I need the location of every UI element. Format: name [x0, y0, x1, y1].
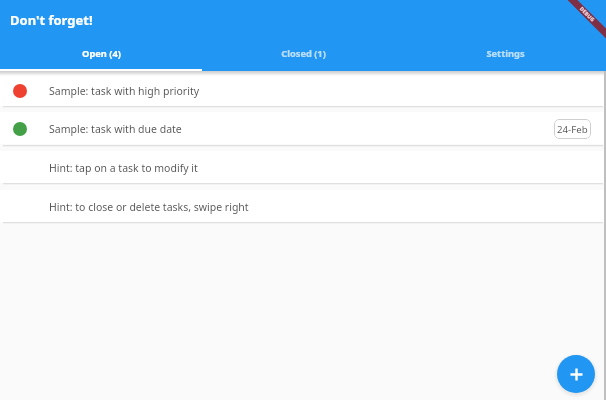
staticText: Settings [486, 47, 525, 60]
staticText: DEBUG [578, 5, 596, 24]
staticText: Don't forget! [10, 11, 93, 29]
staticText: Closed (1) [281, 47, 326, 60]
button[interactable]: Closed (1) [202, 42, 404, 64]
button[interactable]: Sample: task with due date [0, 112, 606, 144]
staticText: Open (4) [82, 47, 121, 60]
staticText: Sample: task with high priority [49, 84, 200, 98]
staticText: Hint: to close or delete tasks, swipe ri… [49, 200, 249, 214]
button[interactable]: Add task [557, 355, 595, 393]
staticText: Sample: task with due date [49, 122, 182, 136]
button[interactable]: Open (4) [0, 42, 202, 64]
staticText: 24-Feb [557, 123, 588, 136]
button[interactable]: Sample: task with high priority [0, 74, 606, 106]
button[interactable]: Settings [404, 42, 606, 64]
staticText: Hint: tap on a task to modify it [49, 161, 198, 175]
button[interactable]: Hint: tap on a task to modify it [0, 151, 606, 183]
button[interactable]: 24-Feb [554, 119, 591, 139]
button[interactable]: Hint: to close or delete tasks, swipe ri… [0, 190, 606, 222]
